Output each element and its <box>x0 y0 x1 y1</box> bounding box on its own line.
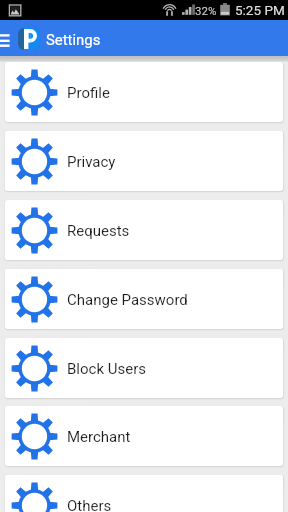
staticText: Privacy <box>67 153 116 171</box>
button[interactable]: Block Users <box>5 338 283 398</box>
staticText: Requests <box>67 222 130 240</box>
button[interactable]: Profile <box>5 62 283 122</box>
staticText: Settings <box>46 31 101 48</box>
staticText: Merchant <box>67 428 131 446</box>
button[interactable]: Requests <box>5 200 283 260</box>
button[interactable]: Merchant <box>5 406 283 466</box>
button[interactable]: Change Password <box>5 269 283 329</box>
staticText: Others <box>67 497 112 512</box>
staticText: 32% <box>195 4 217 17</box>
staticText: Block Users <box>67 360 146 378</box>
button[interactable]: Others <box>5 475 283 512</box>
staticText: Change Password <box>67 291 188 309</box>
staticText: 5:25 PM <box>235 2 285 18</box>
button[interactable]: Open navigation menu <box>0 20 14 56</box>
staticText: Profile <box>67 84 110 102</box>
button[interactable]: Privacy <box>5 131 283 191</box>
